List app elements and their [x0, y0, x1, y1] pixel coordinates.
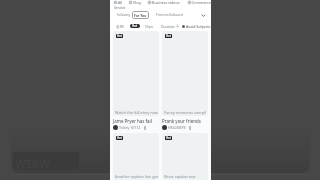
staticText: Telsey 10112 — [119, 125, 141, 130]
button[interactable]: Premium — [154, 11, 171, 19]
staticText: Hot — [117, 136, 122, 140]
staticText: Hot — [117, 34, 122, 38]
button[interactable]: Hot — [130, 24, 140, 28]
button[interactable]: Hot — [113, 133, 159, 180]
staticText: Another caption line goes here ok — [115, 174, 158, 179]
button[interactable]: Hot — [113, 31, 159, 130]
staticText: 全部 — [116, 24, 124, 29]
staticText: Business videos — [152, 0, 180, 5]
button[interactable]: Vlog — [129, 0, 141, 5]
button[interactable]: 全部 — [116, 24, 124, 29]
staticText: Prank your friends — [162, 118, 201, 124]
staticText: Services — [114, 6, 126, 10]
button[interactable]: More options — [143, 126, 147, 130]
button[interactable]: Hot — [162, 133, 208, 180]
staticText: For You — [134, 13, 147, 17]
staticText: Hot — [166, 136, 171, 140]
staticText: Outbound — [169, 13, 183, 17]
button[interactable]: Commerce — [188, 0, 211, 5]
button[interactable]: More options — [188, 126, 192, 130]
staticText: Short caption text — [164, 174, 196, 179]
staticText: Hot — [132, 24, 138, 28]
staticText: Following — [117, 13, 131, 17]
staticText: Hot — [166, 34, 171, 38]
button[interactable]: Avoid Subjects — [182, 24, 211, 29]
button[interactable]: For You — [132, 11, 149, 19]
button[interactable]: Business videos — [148, 0, 180, 5]
staticText: Premium — [156, 13, 169, 17]
staticText: All — [118, 0, 123, 5]
button[interactable]: Clips — [145, 24, 154, 29]
staticText: Vlog — [133, 0, 141, 5]
staticText: HELLMEYE — [168, 125, 186, 130]
button[interactable]: Outbound — [167, 11, 185, 19]
staticText: Watch the full story now here ok — [115, 110, 158, 115]
staticText: Duration — [161, 24, 175, 28]
staticText: Funny moments compil — [164, 110, 206, 115]
staticText: Commerce — [192, 0, 211, 5]
button[interactable]: More categories — [201, 13, 206, 18]
button[interactable]: Hot — [162, 31, 208, 130]
button[interactable]: Following — [115, 11, 133, 19]
button[interactable]: All — [114, 0, 123, 5]
staticText: Jame Pryer has fail — [113, 118, 152, 124]
staticText: Avoid Subjects — [186, 24, 211, 29]
button[interactable]: Duration — [161, 24, 179, 28]
